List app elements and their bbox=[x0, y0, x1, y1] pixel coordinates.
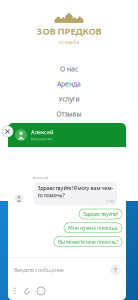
button[interactable]: Send bbox=[110, 264, 121, 275]
button[interactable]: Close chat bbox=[2, 126, 13, 137]
staticText: О нас bbox=[60, 64, 78, 73]
button[interactable]: Attach file bbox=[23, 287, 30, 295]
button[interactable]: Здравствуйте! bbox=[79, 209, 122, 219]
staticText: Мне нужна помощь bbox=[68, 224, 118, 231]
button[interactable]: Аренда bbox=[57, 78, 81, 89]
button[interactable]: More options bbox=[14, 287, 17, 295]
staticText: Аренда bbox=[57, 79, 81, 88]
staticText: ЗОВ ПРЕДКОВ bbox=[36, 25, 101, 37]
staticText: Введите сообщение bbox=[14, 266, 64, 274]
button[interactable]: Мне нужна помощь bbox=[64, 223, 122, 233]
button[interactable]: Отзывы bbox=[56, 108, 81, 119]
staticText: Здравствуйте! Я могу вам чем-то помочь? bbox=[37, 184, 113, 199]
staticText: Алексей bbox=[33, 175, 48, 180]
button[interactable]: Вы можете мне помочь? bbox=[54, 237, 122, 247]
staticText: Здравствуйте! bbox=[83, 210, 118, 218]
staticText: Алексей bbox=[31, 129, 53, 136]
staticText: 1:50 bbox=[106, 199, 113, 204]
staticText: Консультант bbox=[31, 136, 53, 141]
staticText: Отзывы bbox=[56, 109, 81, 118]
button[interactable]: Emoji bbox=[37, 287, 45, 295]
staticText: Вы можете мне помочь? bbox=[58, 238, 118, 245]
button[interactable]: О нас bbox=[60, 63, 78, 74]
button[interactable]: Услуги bbox=[58, 93, 79, 104]
staticText: усадьба bbox=[58, 38, 79, 45]
staticText: Услуги bbox=[58, 94, 79, 103]
